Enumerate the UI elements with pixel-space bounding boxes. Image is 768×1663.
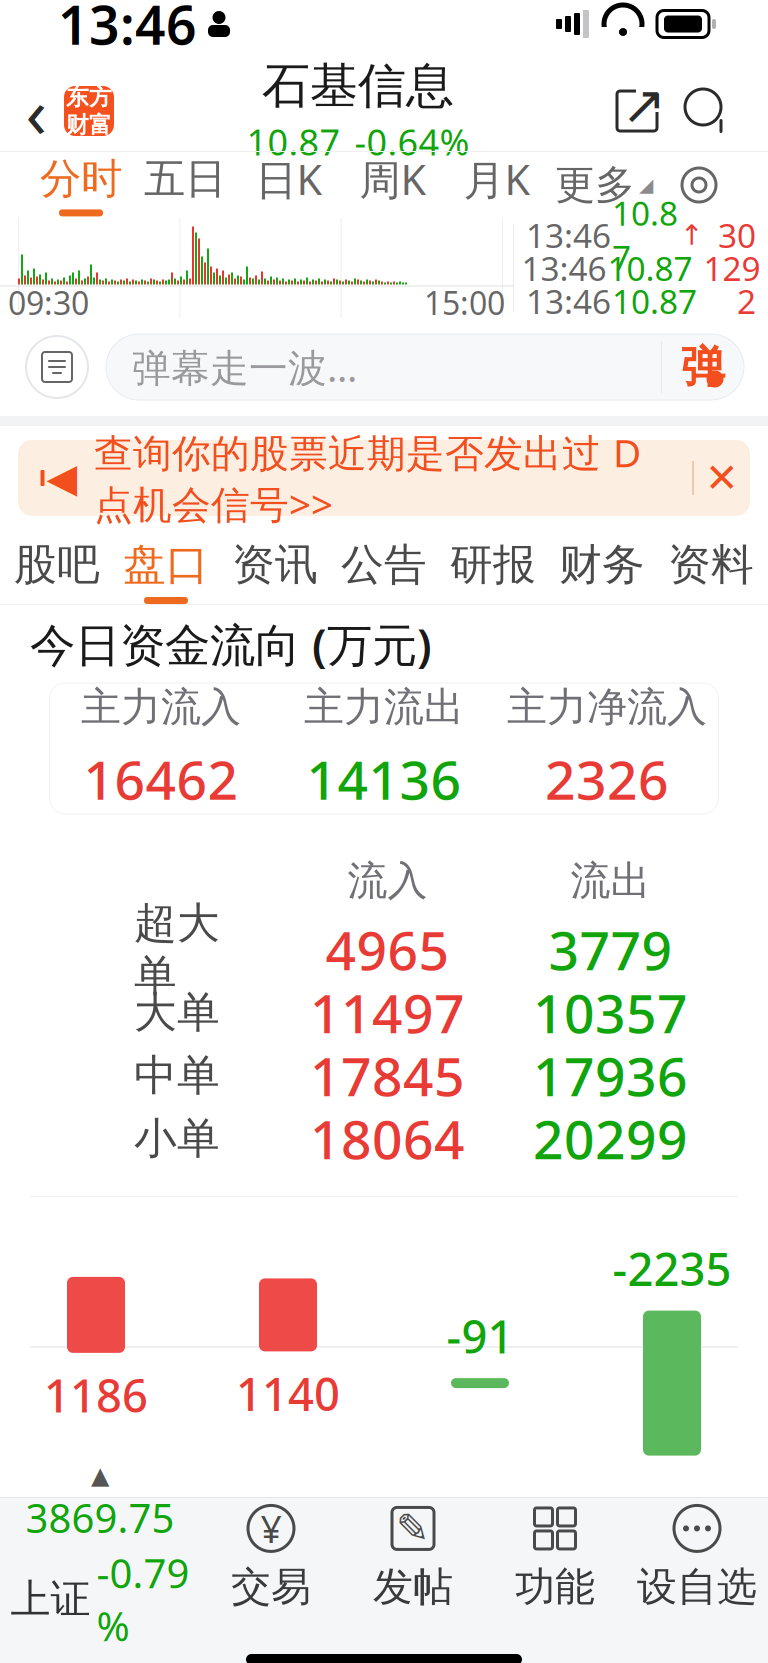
button[interactable]: 研报 xyxy=(438,530,547,604)
staticText: 20299 xyxy=(533,1103,688,1174)
staticText: 中单 xyxy=(134,1049,220,1102)
staticText: -2235 xyxy=(612,1238,731,1299)
staticText: 2 xyxy=(737,279,756,323)
button[interactable]: 月K xyxy=(445,152,549,218)
staticText: 11497 xyxy=(310,977,465,1048)
staticText: 3869.75 xyxy=(25,1491,174,1544)
staticText: 17936 xyxy=(533,1040,688,1111)
button[interactable]: 公告 xyxy=(329,530,438,604)
button[interactable]: 设自选 xyxy=(626,1498,768,1616)
staticText: 流入 xyxy=(347,856,427,905)
button[interactable]: ✎ xyxy=(342,1498,484,1616)
staticText: 09:30 xyxy=(8,281,89,324)
staticText: 10357 xyxy=(533,977,688,1048)
staticText: 周K xyxy=(359,152,426,206)
staticText: 月K xyxy=(463,152,530,206)
button[interactable]: ◀ xyxy=(0,440,768,516)
staticText: 2326 xyxy=(545,744,669,814)
staticText: 资料 xyxy=(668,539,754,591)
staticText: ▲ xyxy=(91,1462,109,1489)
button[interactable]: Back xyxy=(12,76,60,146)
staticText: 财务 xyxy=(559,539,645,591)
staticText: 超大单 xyxy=(134,897,220,1002)
staticText: 财富 xyxy=(66,111,112,139)
staticText: 弹幕走一波... xyxy=(132,341,357,393)
staticText: 大单 xyxy=(134,986,220,1039)
staticText: 石基信息 xyxy=(262,57,454,116)
staticText: 设自选 xyxy=(637,1562,757,1611)
button[interactable]: Share xyxy=(602,76,672,146)
staticText: 1140 xyxy=(236,1363,340,1424)
staticText: ‹ xyxy=(25,65,46,157)
button[interactable]: 东方财富 xyxy=(64,86,114,136)
staticText: 4965 xyxy=(325,914,449,985)
button[interactable]: Settings xyxy=(659,152,739,218)
staticText: ✕ xyxy=(705,455,739,501)
staticText: 30 xyxy=(718,213,756,257)
staticText: 14136 xyxy=(306,744,461,814)
staticText: 五日 xyxy=(144,154,226,204)
staticText: 今日资金流向 (万元) xyxy=(30,614,432,674)
button[interactable]: 更多 xyxy=(549,152,659,218)
staticText: 15:00 xyxy=(424,281,505,324)
staticText: 发帖 xyxy=(373,1562,453,1611)
staticText: ↗ xyxy=(621,75,666,135)
staticText: 研报 xyxy=(450,539,536,591)
staticText: 更多 xyxy=(555,160,635,209)
staticText: 流出 xyxy=(570,856,650,905)
staticText: 10.87 xyxy=(612,279,697,323)
staticText: 16462 xyxy=(83,744,238,814)
staticText: 功能 xyxy=(515,1562,595,1611)
button[interactable]: 分时 xyxy=(29,152,133,218)
button[interactable]: 弹幕走一波... xyxy=(106,334,744,400)
button[interactable]: ▲ xyxy=(0,1498,200,1616)
button[interactable]: 周K xyxy=(341,152,445,218)
button[interactable]: 五日 xyxy=(133,152,237,218)
staticText: -0.79% xyxy=(96,1546,189,1652)
button[interactable]: 功能 xyxy=(484,1498,626,1616)
staticText: ◢ xyxy=(639,174,653,196)
staticText: 17845 xyxy=(310,1040,465,1111)
staticText: 股吧 xyxy=(14,539,100,591)
staticText: 1186 xyxy=(44,1365,148,1425)
staticText: -91 xyxy=(446,1306,513,1366)
staticText: 13:46 xyxy=(521,246,606,290)
button[interactable]: Notes xyxy=(24,334,90,400)
staticText: 资讯 xyxy=(232,539,318,591)
button[interactable]: 资料 xyxy=(656,530,765,604)
staticText: 主力净流入 xyxy=(507,682,707,732)
button[interactable]: 盘口 xyxy=(111,530,220,604)
button[interactable]: 股吧 xyxy=(2,530,111,604)
staticText: 公告 xyxy=(341,539,427,591)
staticText: 18064 xyxy=(310,1103,465,1174)
staticText: ↑ xyxy=(680,219,703,251)
staticText: 分时 xyxy=(40,154,122,204)
staticText: 上证 xyxy=(10,1575,90,1624)
staticText: 10.87 xyxy=(612,191,678,279)
staticText: 主力流入 xyxy=(81,682,241,732)
staticText: 13:46 xyxy=(526,213,611,257)
staticText: 10.87 xyxy=(246,118,340,165)
button[interactable]: 日K xyxy=(237,152,341,218)
staticText: 弹 xyxy=(681,340,725,394)
staticText: -0.64% xyxy=(354,118,469,165)
staticText: ✎ xyxy=(396,1506,430,1551)
button[interactable]: 资讯 xyxy=(220,530,329,604)
staticText: 3779 xyxy=(548,914,672,985)
staticText: 盘口 xyxy=(123,539,209,591)
staticText: ¥ xyxy=(260,1504,281,1553)
button[interactable]: ¥ xyxy=(200,1498,342,1616)
staticText: 129 xyxy=(703,246,760,290)
staticText: ◀ xyxy=(46,455,77,501)
staticText: 13:46 xyxy=(526,279,611,323)
staticText: 查询你的股票近期是否发出过 D 点机会信号>> xyxy=(94,427,641,529)
staticText: 13:46 xyxy=(58,0,197,59)
staticText: 主力流出 xyxy=(304,682,464,732)
button[interactable]: 财务 xyxy=(547,530,656,604)
staticText: 日K xyxy=(255,152,322,206)
staticText: 交易 xyxy=(231,1562,311,1611)
staticText: 小单 xyxy=(134,1112,220,1165)
staticText: 10.87 xyxy=(607,246,692,290)
staticText: 东方 xyxy=(66,83,112,111)
button[interactable]: Search xyxy=(672,76,742,146)
